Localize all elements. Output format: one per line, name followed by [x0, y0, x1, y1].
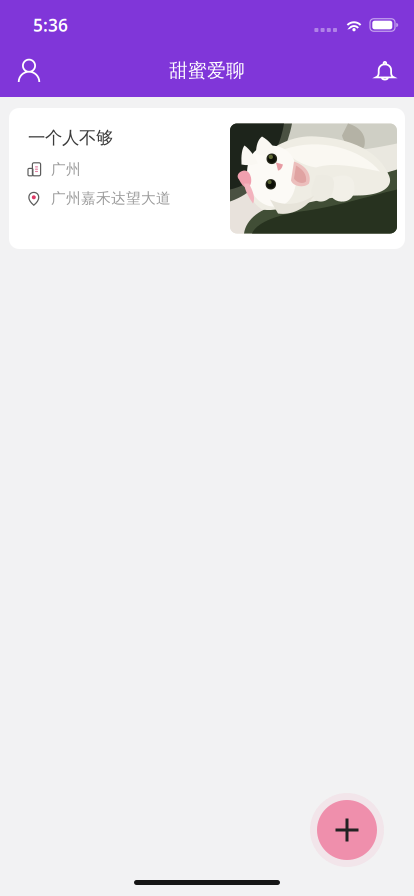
staticText: 广州 — [51, 160, 81, 178]
button[interactable]: Profile — [0, 44, 58, 97]
staticText: 广州嘉禾达望大道 — [51, 189, 171, 207]
button[interactable]: Notifications — [356, 44, 414, 97]
staticText: 5:36 — [33, 13, 68, 36]
button[interactable]: Add — [310, 793, 384, 867]
button[interactable]: 一个人不够 — [9, 108, 405, 249]
staticText: 甜蜜爱聊 — [169, 59, 245, 82]
staticText: 一个人不够 — [28, 127, 113, 148]
